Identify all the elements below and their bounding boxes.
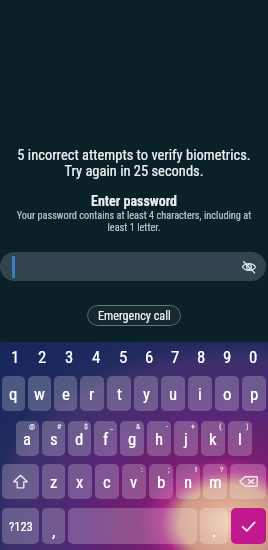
staticText: 5 [119, 347, 128, 367]
staticText: 1 [11, 347, 20, 367]
button[interactable]: f [94, 421, 117, 456]
staticText: t [117, 384, 122, 404]
button[interactable]: t [107, 376, 131, 411]
staticText: 5 incorrect attempts to verify biometric… [0, 147, 268, 180]
button[interactable]: z [42, 464, 65, 499]
staticText: & [136, 422, 141, 431]
staticText: Enter password [0, 193, 268, 209]
button[interactable]: l [228, 421, 252, 456]
staticText: x [76, 472, 84, 492]
button[interactable]: Show password [239, 257, 259, 277]
button[interactable]: Shift [2, 464, 39, 499]
staticText: ; [168, 465, 170, 474]
button[interactable]: Show password [0, 252, 266, 281]
button[interactable]: o [215, 376, 239, 411]
button[interactable]: y [134, 376, 158, 411]
staticText: Your password contains at least 4 charac… [15, 209, 253, 234]
staticText: ( [219, 422, 222, 431]
button[interactable]: 6 [136, 342, 162, 371]
button[interactable]: 7 [162, 342, 188, 371]
staticText: q [9, 384, 18, 404]
button[interactable]: d [68, 421, 91, 456]
staticText: : [141, 465, 143, 474]
button[interactable]: , [42, 508, 65, 544]
button[interactable]: m [203, 464, 227, 499]
staticText: 0 [249, 347, 258, 367]
staticText: _ [110, 422, 114, 431]
staticText: e [62, 384, 70, 404]
button[interactable]: x [68, 464, 92, 499]
staticText: a [23, 429, 32, 449]
staticText: . [212, 521, 217, 541]
button[interactable]: e [54, 376, 77, 411]
button[interactable]: 0 [240, 342, 266, 371]
button[interactable]: h [147, 421, 171, 456]
button[interactable]: Backspace [230, 464, 266, 499]
button[interactable]: Space [68, 508, 197, 544]
staticText: z [50, 472, 58, 492]
button[interactable]: q [2, 376, 25, 411]
button[interactable]: c [95, 464, 119, 499]
staticText: , [52, 521, 56, 541]
button[interactable]: Enter [231, 508, 266, 544]
staticText: k [209, 429, 217, 449]
staticText: ! [195, 465, 197, 474]
staticText: 7 [171, 347, 180, 367]
button[interactable]: u [161, 376, 185, 411]
staticText: 8 [197, 347, 206, 367]
button[interactable]: a [16, 421, 39, 456]
button[interactable]: v [122, 464, 146, 499]
staticText: 2 [38, 347, 47, 367]
button[interactable]: 3 [56, 342, 83, 371]
staticText: r [89, 384, 95, 404]
button[interactable]: i [188, 376, 212, 411]
staticText: # [57, 422, 62, 431]
staticText: n [184, 472, 193, 492]
button[interactable]: n [176, 464, 200, 499]
button[interactable]: 1 [2, 342, 29, 371]
staticText: - [166, 422, 168, 431]
staticText: o [223, 384, 232, 404]
button[interactable]: Emergency call [87, 305, 181, 326]
button[interactable]: p [242, 376, 266, 411]
button[interactable]: 8 [188, 342, 214, 371]
button[interactable]: w [28, 376, 51, 411]
button[interactable]: 4 [83, 342, 110, 371]
button[interactable]: ?123 [2, 508, 39, 544]
staticText: g [128, 429, 137, 449]
staticText: m [209, 472, 222, 492]
button[interactable]: g [120, 421, 144, 456]
staticText: Emergency call [98, 309, 171, 323]
button[interactable]: r [80, 376, 104, 411]
staticText: + [191, 422, 195, 431]
staticText: i [198, 384, 202, 404]
staticText: v [130, 472, 138, 492]
staticText: p [250, 384, 259, 404]
button[interactable]: s [42, 421, 65, 456]
staticText: w [34, 384, 45, 404]
staticText: d [75, 429, 84, 449]
button[interactable]: . [200, 508, 228, 544]
staticText: l [238, 429, 242, 449]
staticText: f [103, 429, 109, 449]
button[interactable]: j [174, 421, 198, 456]
staticText: y [143, 384, 150, 404]
staticText: j [184, 429, 188, 449]
staticText: 3 [65, 347, 74, 367]
button[interactable]: k [201, 421, 225, 456]
button[interactable]: b [149, 464, 173, 499]
staticText: @ [29, 422, 36, 431]
button[interactable]: 5 [110, 342, 136, 371]
button[interactable]: 9 [214, 342, 240, 371]
staticText: 4 [92, 347, 101, 367]
staticText: ?123 [9, 519, 33, 534]
button[interactable]: 2 [29, 342, 56, 371]
staticText: s [50, 429, 58, 449]
staticText: c [103, 472, 111, 492]
staticText: u [169, 384, 178, 404]
staticText: h [155, 429, 164, 449]
staticText: $ [84, 422, 88, 431]
staticText: 9 [223, 347, 232, 367]
staticText: ? [220, 465, 224, 474]
staticText: b [157, 472, 166, 492]
